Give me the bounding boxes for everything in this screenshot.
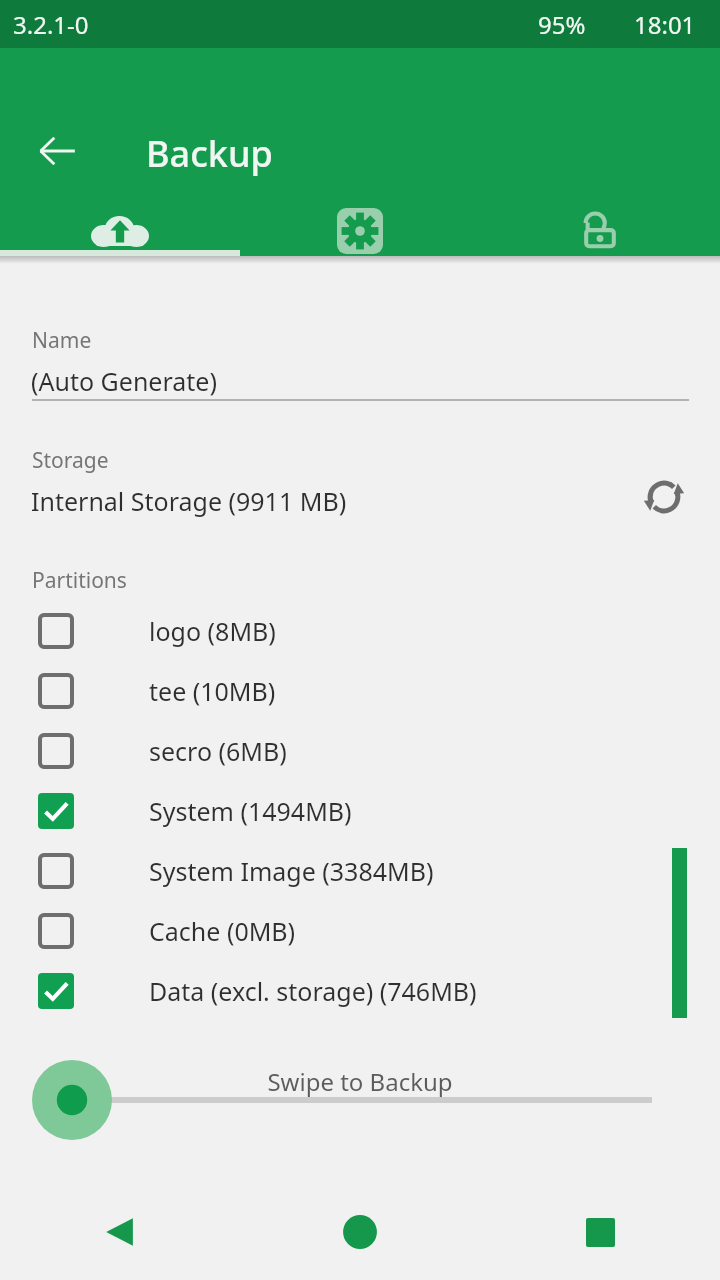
button[interactable]: logo (8MB): [0, 601, 720, 661]
button[interactable]: Backup: [0, 206, 240, 256]
staticText: Data (excl. storage) (746MB): [149, 974, 477, 1008]
staticText: Swipe to Backup: [0, 1065, 720, 1098]
button[interactable]: Cache (0MB): [0, 901, 720, 961]
button[interactable]: Swipe to Backup: [32, 1060, 112, 1140]
staticText: (Auto Generate): [31, 364, 217, 398]
button[interactable]: Recent apps: [480, 1184, 720, 1280]
button[interactable]: Home: [240, 1184, 480, 1280]
staticText: Internal Storage (9911 MB): [31, 484, 347, 518]
button[interactable]: Data (excl. storage) (746MB): [0, 961, 720, 1021]
staticText: Cache (0MB): [149, 914, 296, 948]
button[interactable]: Back: [0, 1184, 240, 1280]
staticText: secro (6MB): [149, 734, 287, 768]
staticText: logo (8MB): [149, 614, 276, 648]
button[interactable]: Encryption: [480, 206, 720, 256]
staticText: 18:01: [634, 8, 696, 41]
staticText: Storage: [32, 446, 109, 475]
staticText: 3.2.1-0: [13, 8, 89, 41]
staticText: Name: [32, 326, 92, 355]
staticText: Partitions: [32, 566, 127, 595]
staticText: tee (10MB): [149, 674, 276, 708]
staticText: System (1494MB): [149, 794, 352, 828]
button[interactable]: System (1494MB): [0, 781, 720, 841]
button[interactable]: System Image (3384MB): [0, 841, 720, 901]
button[interactable]: Settings: [240, 206, 480, 256]
staticText: Backup: [146, 129, 273, 178]
button[interactable]: Navigate up: [22, 116, 92, 186]
button[interactable]: secro (6MB): [0, 721, 720, 781]
staticText: System Image (3384MB): [149, 854, 434, 888]
staticText: 95%: [538, 8, 586, 41]
button[interactable]: Refresh: [636, 469, 692, 525]
button[interactable]: tee (10MB): [0, 661, 720, 721]
